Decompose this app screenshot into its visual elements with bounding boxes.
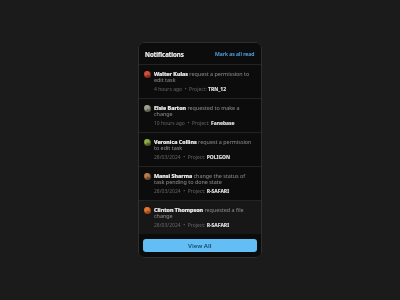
button[interactable]: User avatar — [138, 65, 262, 98]
staticText: Notifications — [145, 50, 184, 58]
button[interactable]: Mark as all read — [214, 49, 256, 58]
other: User avatar — [144, 207, 151, 214]
staticText: 10 hours ago • Project: Fanebase — [154, 120, 235, 127]
staticText: Veronica Collins request a permission to… — [154, 138, 257, 152]
staticText: Elsie Barton requested to make a change — [154, 104, 257, 118]
staticText: View All — [188, 242, 212, 250]
button[interactable]: User avatar — [138, 167, 262, 200]
other: User avatar — [144, 105, 151, 112]
staticText: Mansi Sharma change the status of task p… — [154, 172, 257, 186]
button[interactable]: User avatar — [138, 201, 262, 234]
other: User avatar — [144, 173, 151, 180]
staticText: Walter Kulas request a permission to edi… — [154, 70, 257, 84]
button[interactable]: View All — [143, 239, 257, 252]
staticText: 28/03/2024 • Project: POLIGON — [154, 154, 231, 161]
staticText: 4 hours ago • Project: TRN_12 — [154, 86, 227, 93]
other: User avatar — [144, 71, 151, 78]
staticText: Clinton Thompson requested a file change — [154, 206, 257, 220]
staticText: 28/03/2024 • Project: R-SAFARI — [154, 222, 230, 229]
other: User avatar — [144, 139, 151, 146]
button[interactable]: User avatar — [138, 133, 262, 166]
staticText: 28/03/2024 • Project: R-SAFARI — [154, 188, 230, 195]
button[interactable]: User avatar — [138, 99, 262, 132]
staticText: Mark as all read — [215, 50, 255, 57]
